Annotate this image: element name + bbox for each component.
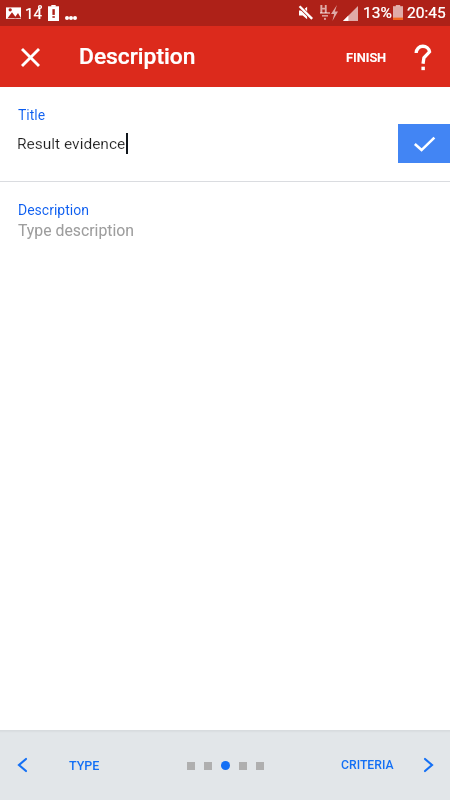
- staticText: Description: [79, 43, 196, 70]
- button[interactable]: Help: [399, 33, 447, 81]
- staticText: Title: [18, 107, 46, 123]
- staticText: FINISH: [346, 50, 387, 65]
- button[interactable]: FINISH: [332, 36, 401, 79]
- staticText: 13%: [363, 4, 392, 22]
- button[interactable]: TYPE: [0, 741, 100, 789]
- button[interactable]: Close: [6, 33, 54, 81]
- staticText: 14: [25, 5, 42, 23]
- button[interactable]: CRITERIA: [333, 741, 442, 789]
- staticText: TYPE: [69, 758, 100, 773]
- staticText: H: [320, 4, 328, 16]
- button[interactable]: Confirm: [398, 124, 450, 163]
- staticText: Result evidence: [17, 135, 126, 153]
- staticText: 20:45: [407, 4, 446, 22]
- staticText: Type description: [18, 221, 135, 240]
- staticText: Description: [18, 202, 89, 218]
- staticText: CRITERIA: [341, 758, 394, 772]
